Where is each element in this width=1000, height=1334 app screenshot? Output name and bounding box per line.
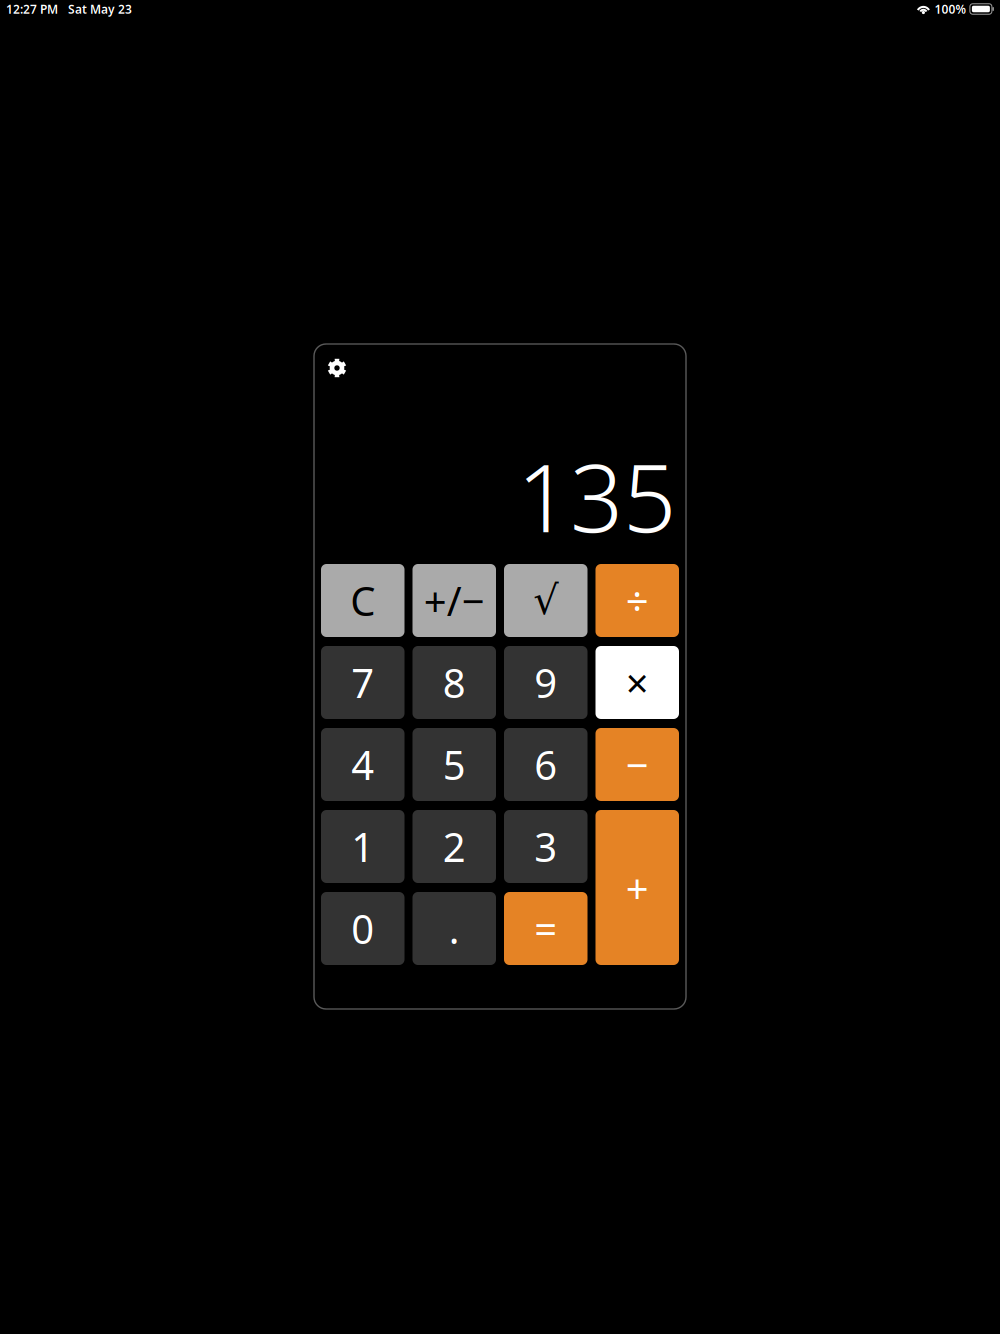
staticText: = bbox=[534, 902, 557, 955]
staticText: . bbox=[449, 902, 460, 955]
staticText: ÷ bbox=[626, 574, 649, 627]
button[interactable]: + bbox=[595, 810, 679, 965]
button[interactable]: 7 bbox=[321, 646, 404, 719]
staticText: + bbox=[626, 861, 649, 914]
staticText: C bbox=[350, 574, 375, 627]
button[interactable]: 2 bbox=[412, 810, 496, 883]
button[interactable]: 9 bbox=[504, 646, 587, 719]
button[interactable]: . bbox=[412, 892, 496, 965]
button[interactable]: 8 bbox=[412, 646, 496, 719]
staticText: 3 bbox=[534, 820, 557, 873]
button[interactable]: Settings bbox=[322, 353, 352, 383]
button[interactable]: 5 bbox=[412, 728, 496, 801]
staticText: − bbox=[626, 738, 649, 791]
button[interactable]: √ bbox=[504, 564, 587, 637]
staticText: 12:27 PM bbox=[6, 1, 58, 17]
button[interactable]: +/− bbox=[412, 564, 496, 637]
button[interactable]: 1 bbox=[321, 810, 404, 883]
button[interactable]: − bbox=[595, 728, 679, 801]
button[interactable]: ÷ bbox=[595, 564, 679, 637]
staticText: 4 bbox=[351, 738, 374, 791]
staticText: 100% bbox=[934, 1, 966, 17]
staticText: Sat May 23 bbox=[68, 1, 132, 17]
button[interactable]: 6 bbox=[504, 728, 587, 801]
staticText: 0 bbox=[351, 902, 374, 955]
staticText: 8 bbox=[443, 656, 466, 709]
staticText: × bbox=[626, 656, 649, 709]
staticText: 2 bbox=[443, 820, 466, 873]
button[interactable]: 3 bbox=[504, 810, 587, 883]
staticText: 1 bbox=[351, 820, 374, 873]
staticText: +/− bbox=[424, 574, 485, 627]
staticText: 9 bbox=[534, 656, 557, 709]
button[interactable]: C bbox=[321, 564, 404, 637]
staticText: 7 bbox=[351, 656, 374, 709]
button[interactable]: = bbox=[504, 892, 587, 965]
staticText: 6 bbox=[534, 738, 557, 791]
button[interactable]: × bbox=[595, 646, 679, 719]
button[interactable]: 0 bbox=[321, 892, 404, 965]
staticText: √ bbox=[533, 578, 558, 623]
button[interactable]: 4 bbox=[321, 728, 404, 801]
staticText: 135 bbox=[517, 434, 676, 558]
staticText: 5 bbox=[443, 738, 466, 791]
